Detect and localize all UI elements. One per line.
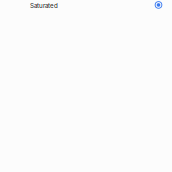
staticText: Saturated [30, 2, 58, 9]
button[interactable]: Saturated, selected [0, 0, 172, 9]
